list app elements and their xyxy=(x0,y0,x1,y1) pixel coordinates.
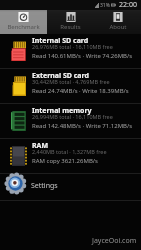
staticText: 26,994MB total · 16,110MB free xyxy=(32,113,113,120)
staticText: Settings xyxy=(31,181,58,191)
button[interactable]: External SD card xyxy=(0,69,141,103)
staticText: 31% xyxy=(100,2,110,9)
staticText: 26,976MB total · 16,110MB free xyxy=(32,43,113,50)
staticText: Benchmark xyxy=(7,23,40,31)
staticText: JayceOoi.com xyxy=(92,236,137,246)
button[interactable]: Benchmark xyxy=(0,10,47,34)
staticText: Read 24.74MB/s · Write 18.39MB/s xyxy=(32,87,129,95)
staticText: 22:00 xyxy=(119,0,137,10)
button[interactable]: Internal memory xyxy=(0,104,141,138)
button[interactable]: Internal SD card xyxy=(0,34,141,68)
staticText: RAM copy 3621.26MB/s xyxy=(32,157,98,165)
staticText: 2,440MB total · 1,327MB free xyxy=(32,148,107,155)
staticText: About xyxy=(109,23,127,31)
staticText: Results xyxy=(60,23,81,31)
staticText: 30,442MB total · 4,769MB free xyxy=(32,78,110,85)
button[interactable]: About xyxy=(94,10,141,34)
staticText: Read 140.61MB/s · Write 74.26MB/s xyxy=(32,52,133,60)
staticText: RAM xyxy=(32,141,49,151)
button[interactable]: Settings xyxy=(0,174,141,200)
staticText: Internal SD card xyxy=(32,36,89,46)
staticText: Read 142.48MB/s · Write 71.12MB/s xyxy=(32,122,133,130)
staticText: External SD card xyxy=(32,71,89,81)
staticText: Internal memory xyxy=(32,106,92,116)
button[interactable]: RAM xyxy=(0,139,141,173)
button[interactable]: Results xyxy=(47,10,94,34)
